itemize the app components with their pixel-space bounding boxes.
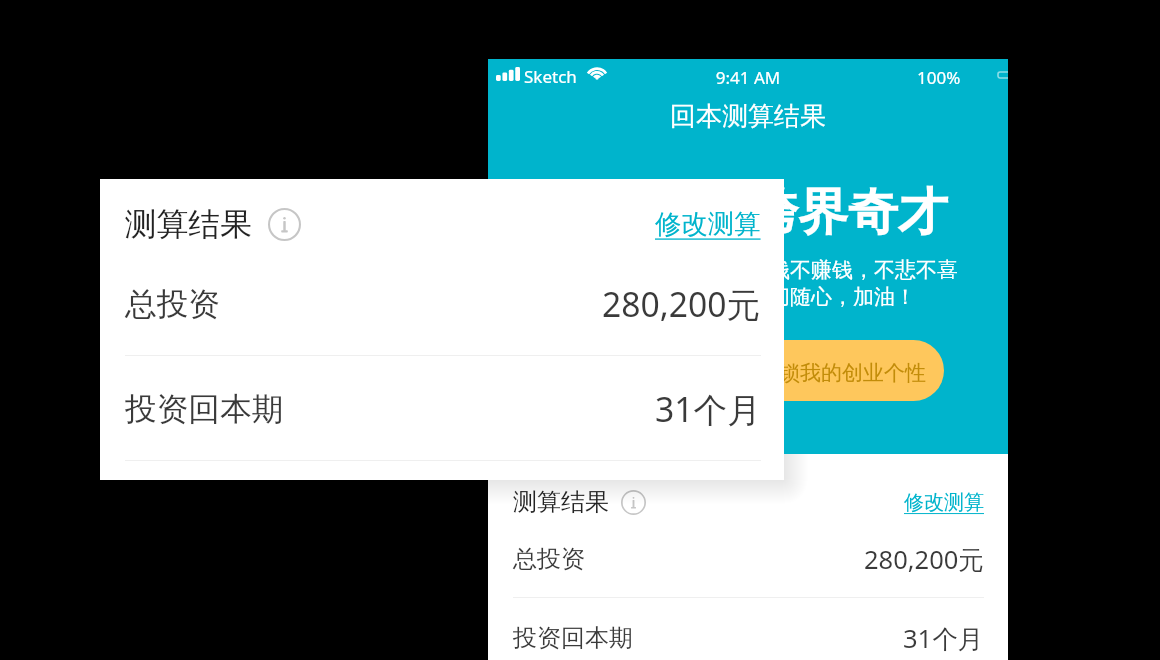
staticText: 修改测算 <box>904 490 984 515</box>
button[interactable]: More information <box>268 208 301 241</box>
button[interactable]: 修改测算 <box>655 208 761 241</box>
staticText: 280,200元 <box>864 542 984 577</box>
staticText: 你的世界你做主，一切随心，加油！ <box>580 284 916 310</box>
button[interactable]: 投资回本期 <box>125 380 761 438</box>
staticText: 你做事全凭兴趣，管它赚钱不赚钱，不悲不喜 <box>538 257 958 283</box>
staticText: 投资回本期 <box>513 623 633 653</box>
staticText: 不安分的跨界奇才 <box>548 181 948 244</box>
staticText: Sketch <box>524 65 577 88</box>
staticText: 280,200元 <box>602 281 761 327</box>
staticText: 回本测算结果 <box>670 100 826 133</box>
button[interactable]: 修改测算 <box>904 490 984 515</box>
button[interactable]: 投资回本期 <box>513 616 984 660</box>
staticText: 100% <box>917 66 961 89</box>
staticText: 总投资 <box>125 284 221 324</box>
staticText: 测算结果 <box>125 204 252 244</box>
button[interactable]: More information <box>621 490 646 515</box>
button[interactable]: 现在就点击下方按钮解锁我的创业个性 <box>551 340 944 401</box>
staticText: 总投资 <box>513 544 585 574</box>
staticText: 修改测算 <box>655 208 761 241</box>
staticText: 测算结果 <box>513 487 609 517</box>
other: Cellular signal <box>496 67 520 81</box>
button[interactable]: 总投资 <box>513 537 984 581</box>
button[interactable]: 总投资 <box>125 275 761 333</box>
staticText: 31个月 <box>655 386 761 432</box>
staticText: 现在就点击下方按钮解锁我的创业个性 <box>569 360 926 386</box>
staticText: 9:41 AM <box>488 66 1008 89</box>
other: Wi-Fi <box>587 67 607 80</box>
staticText: 投资回本期 <box>125 389 284 429</box>
staticText: 31个月 <box>903 621 984 656</box>
